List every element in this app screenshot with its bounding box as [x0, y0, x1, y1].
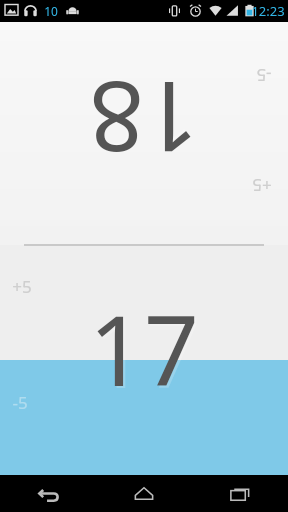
staticText: 18: [87, 52, 197, 183]
staticText: 18: [89, 54, 199, 185]
staticText: 17: [89, 283, 199, 414]
staticText: +5: [12, 275, 32, 298]
button[interactable]: +5: [246, 168, 278, 203]
staticText: 17: [91, 285, 201, 416]
staticText: 10: [44, 3, 58, 19]
button[interactable]: Back: [0, 475, 96, 512]
button[interactable]: -5: [250, 58, 278, 93]
button[interactable]: 17: [0, 245, 288, 475]
button[interactable]: +5: [6, 269, 38, 304]
staticText: -5: [12, 391, 28, 414]
staticText: 12:23: [251, 2, 285, 20]
button[interactable]: Home: [96, 475, 192, 512]
staticText: +5: [252, 174, 272, 197]
button[interactable]: -5: [6, 385, 34, 420]
button[interactable]: 18: [0, 22, 288, 245]
button[interactable]: Recent apps: [192, 475, 288, 512]
staticText: -5: [256, 64, 272, 87]
